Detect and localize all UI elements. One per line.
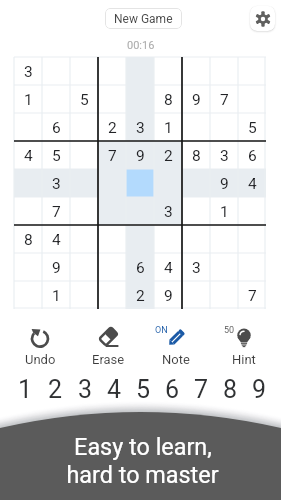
button[interactable]: 5 (129, 375, 158, 403)
button[interactable]: 4 (238, 169, 266, 197)
button[interactable]: 1 (154, 113, 182, 141)
button[interactable] (182, 281, 210, 309)
button[interactable]: 3 (70, 375, 100, 403)
button[interactable]: 8 (14, 225, 42, 253)
button[interactable]: 9 (154, 281, 182, 309)
button[interactable]: 6 (158, 375, 187, 403)
button[interactable] (70, 253, 98, 281)
button[interactable] (98, 253, 126, 281)
button[interactable]: 8 (154, 85, 182, 113)
button[interactable]: 3 (182, 253, 210, 281)
button[interactable]: 7 (187, 375, 216, 403)
button[interactable] (42, 85, 70, 113)
button[interactable]: 2 (40, 375, 70, 403)
button[interactable] (126, 169, 154, 197)
button[interactable] (70, 225, 98, 253)
button[interactable] (210, 281, 238, 309)
button[interactable]: 6 (238, 141, 266, 169)
button[interactable]: 6 (126, 253, 154, 281)
button[interactable]: 9 (126, 141, 154, 169)
button[interactable]: 7 (98, 141, 126, 169)
button[interactable]: 9 (210, 169, 238, 197)
button[interactable] (14, 197, 42, 225)
button[interactable] (210, 57, 238, 85)
button[interactable] (98, 225, 126, 253)
staticText: 7 (108, 147, 117, 165)
button[interactable] (154, 169, 182, 197)
button[interactable]: 3 (154, 197, 182, 225)
button[interactable]: 50 (210, 321, 278, 366)
button[interactable]: 9 (245, 375, 274, 403)
button[interactable] (70, 57, 98, 85)
button[interactable]: 4 (154, 253, 182, 281)
button[interactable] (182, 113, 210, 141)
button[interactable]: 7 (210, 85, 238, 113)
button[interactable] (14, 253, 42, 281)
button[interactable]: 9 (42, 253, 70, 281)
button[interactable]: 2 (98, 113, 126, 141)
button[interactable] (182, 225, 210, 253)
button[interactable]: 9 (182, 85, 210, 113)
button[interactable] (182, 57, 210, 85)
button[interactable]: 1 (42, 281, 70, 309)
button[interactable]: 2 (154, 141, 182, 169)
button[interactable] (42, 57, 70, 85)
button[interactable] (126, 197, 154, 225)
button[interactable]: 4 (42, 225, 70, 253)
button[interactable]: 1 (14, 85, 42, 113)
button[interactable] (70, 281, 98, 309)
button[interactable] (98, 281, 126, 309)
button[interactable]: Settings (250, 6, 275, 31)
button[interactable] (14, 281, 42, 309)
button[interactable]: 3 (126, 113, 154, 141)
button[interactable]: 3 (42, 169, 70, 197)
button[interactable]: 1 (10, 375, 40, 403)
button[interactable] (238, 197, 266, 225)
button[interactable]: 5 (42, 141, 70, 169)
button[interactable]: 1 (210, 197, 238, 225)
button[interactable] (14, 113, 42, 141)
button[interactable]: 7 (42, 197, 70, 225)
button[interactable]: 4 (100, 375, 129, 403)
button[interactable] (238, 57, 266, 85)
button[interactable]: ON (142, 321, 210, 366)
button[interactable]: 5 (238, 113, 266, 141)
button[interactable] (126, 225, 154, 253)
button[interactable]: 8 (182, 141, 210, 169)
button[interactable] (98, 57, 126, 85)
staticText: Hint (232, 352, 256, 366)
button[interactable]: New Game (105, 8, 182, 29)
button[interactable] (154, 225, 182, 253)
button[interactable] (70, 169, 98, 197)
button[interactable] (238, 225, 266, 253)
button[interactable]: Erase (74, 321, 142, 366)
staticText: 1 (164, 119, 173, 137)
button[interactable] (98, 197, 126, 225)
button[interactable] (182, 169, 210, 197)
staticText: 4 (52, 231, 61, 249)
button[interactable] (182, 197, 210, 225)
button[interactable]: Undo (6, 321, 74, 366)
button[interactable] (98, 169, 126, 197)
button[interactable]: 7 (238, 281, 266, 309)
button[interactable] (210, 253, 238, 281)
button[interactable] (98, 85, 126, 113)
button[interactable]: 8 (216, 375, 245, 403)
button[interactable] (70, 141, 98, 169)
button[interactable]: 3 (14, 57, 42, 85)
button[interactable]: 2 (126, 281, 154, 309)
button[interactable]: 6 (42, 113, 70, 141)
button[interactable]: 4 (14, 141, 42, 169)
button[interactable] (70, 113, 98, 141)
button[interactable] (238, 85, 266, 113)
button[interactable]: 3 (210, 141, 238, 169)
button[interactable] (154, 57, 182, 85)
button[interactable] (238, 253, 266, 281)
button[interactable] (210, 225, 238, 253)
button[interactable] (70, 197, 98, 225)
button[interactable]: 5 (70, 85, 98, 113)
button[interactable] (210, 113, 238, 141)
